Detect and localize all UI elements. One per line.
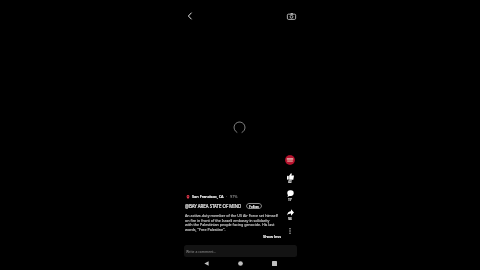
staticText: An active-duty member of the US Air Forc… [185,213,278,218]
button[interactable]: Write a comment... [184,245,297,257]
staticText: Write a comment... [186,249,217,254]
staticText: 94 [288,217,292,221]
staticText: 17 [288,198,292,202]
button[interactable]: Profile [285,155,295,165]
button[interactable]: Like [284,170,296,182]
button[interactable]: More options [284,225,296,237]
button[interactable]: Back [182,8,198,24]
button[interactable]: Share [284,206,296,218]
staticText: @BAY AREA STATE OF MIND [185,203,242,209]
staticText: on fire in front of the Israeli embassy … [185,218,270,223]
staticText: words, "Free Palestine". [185,227,226,232]
staticText: 97% [230,194,238,199]
staticText: · [226,194,228,199]
staticText: Follow [249,204,259,208]
staticText: with the Palestinian people facing genoc… [185,222,275,227]
button[interactable]: Show less [185,234,282,239]
staticText: San Francisco, CA [192,194,224,199]
button[interactable]: Follow [246,203,262,209]
button[interactable]: Recents [267,256,281,270]
button[interactable]: Comment [284,187,296,199]
button[interactable]: Back [199,256,213,270]
button[interactable]: Home [233,256,247,270]
staticText: Show less [263,234,282,239]
staticText: 42 [288,180,292,184]
button[interactable]: Camera [283,8,299,24]
